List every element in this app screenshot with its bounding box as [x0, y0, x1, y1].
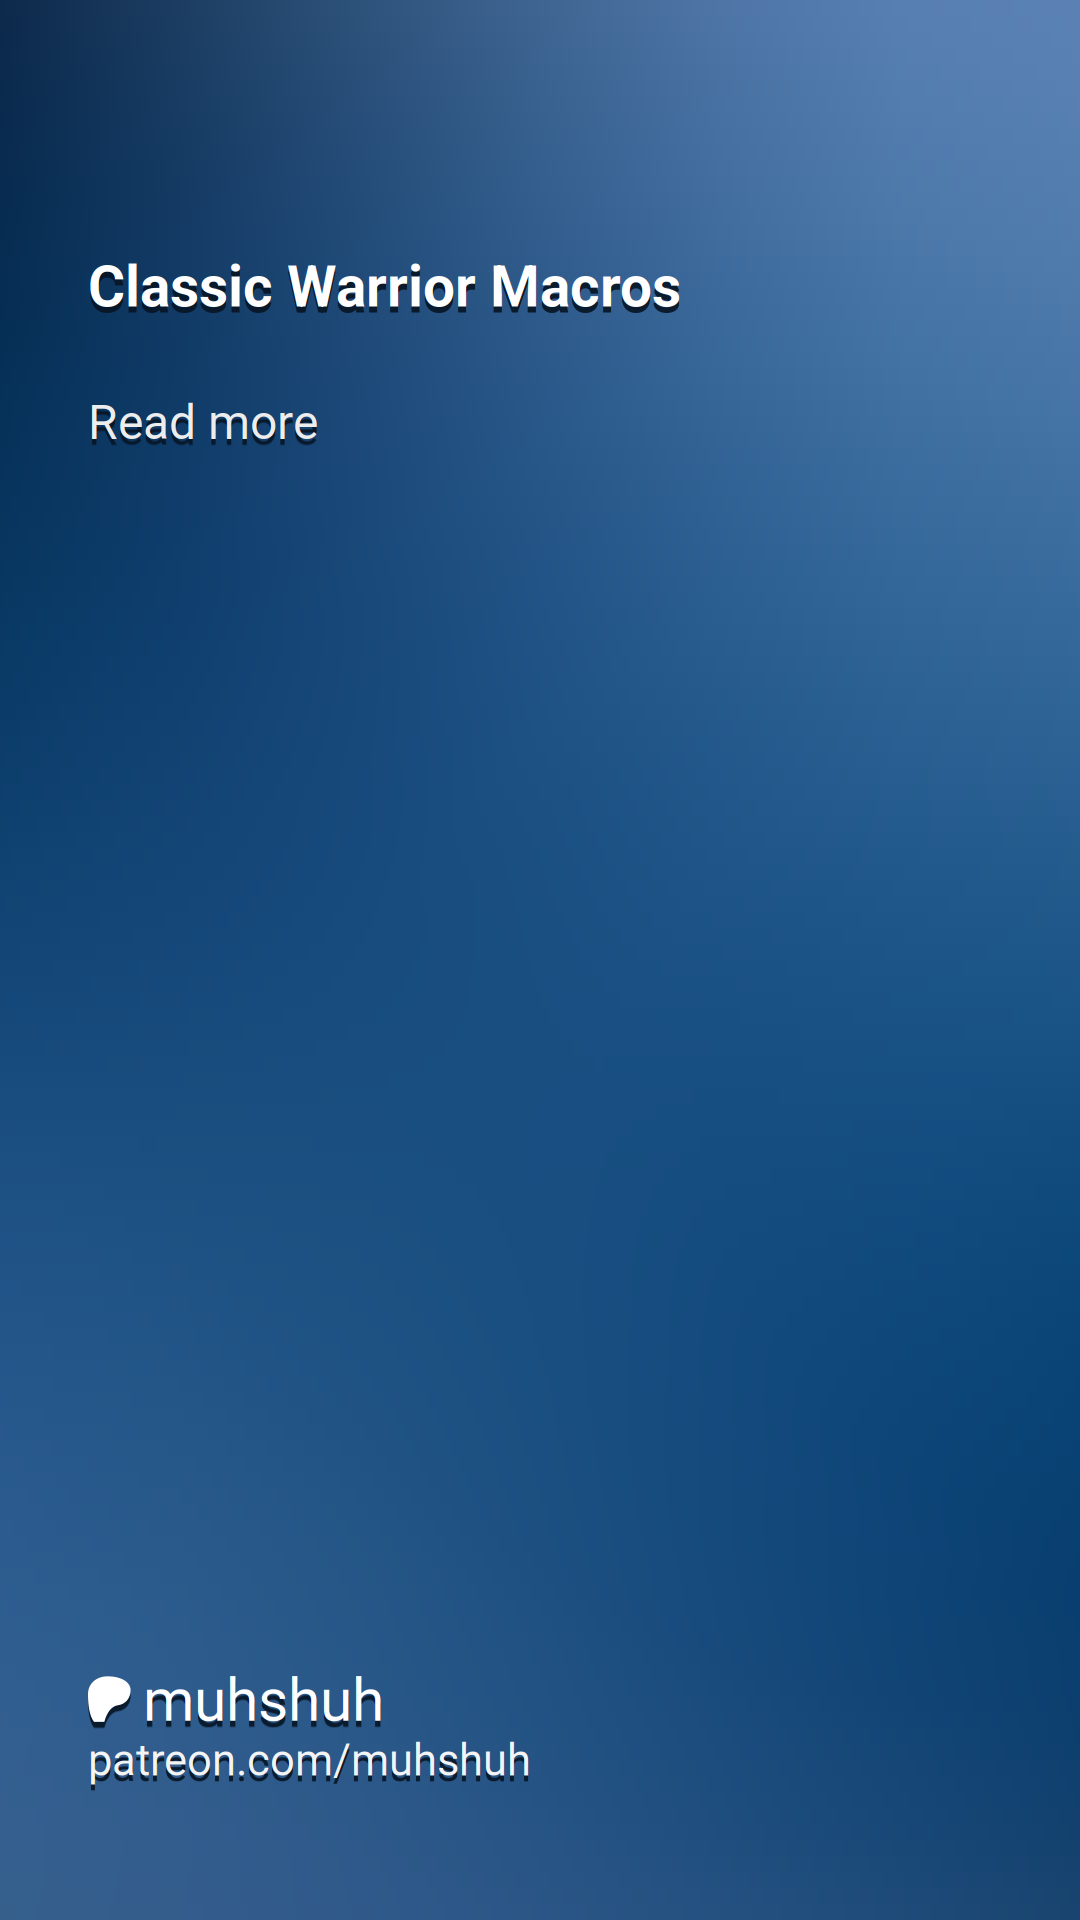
staticText: muhshuh — [143, 1666, 384, 1735]
staticText: Classic Warrior Macros — [88, 254, 681, 320]
button[interactable]: Read more — [88, 320, 342, 451]
staticText: Read more — [88, 394, 318, 451]
button[interactable]: muhshuh — [88, 1666, 531, 1786]
staticText: patreon.com/muhshuh — [88, 1735, 531, 1786]
